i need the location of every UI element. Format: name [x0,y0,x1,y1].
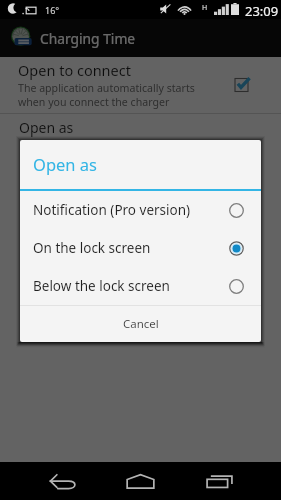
button[interactable]: Open as [0,114,281,144]
staticText: 16° [45,4,60,16]
staticText: The application automatically starts [18,81,195,95]
staticText: H [202,3,208,13]
staticText: Below the lock screen [33,277,170,295]
staticText: Open to connect [18,60,131,80]
button[interactable]: Open to connect [0,57,281,108]
button[interactable]: Notification (Pro version) [20,191,261,229]
staticText: 23:09 [245,2,279,20]
button[interactable]: Recent apps [189,462,249,500]
staticText: Open as [19,118,74,137]
button[interactable]: On the lock screen [20,229,261,267]
button[interactable]: Back [32,462,92,500]
staticText: Notification (Pro version) [33,201,191,219]
staticText: Charging Time [40,29,136,48]
button[interactable]: Home [110,462,170,500]
staticText: Open as [33,153,97,175]
button[interactable]: Cancel [20,306,261,342]
staticText: when you connect the charger [18,95,170,109]
staticText: Cancel [123,316,159,332]
staticText: On the lock screen [33,239,151,257]
button[interactable]: Below the lock screen [20,267,261,305]
